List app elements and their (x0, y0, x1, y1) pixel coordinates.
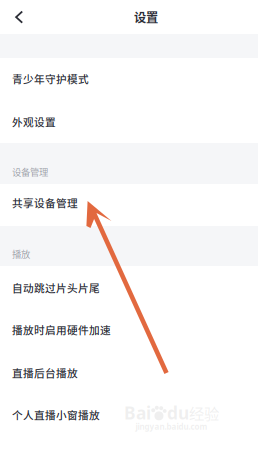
staticText: 播放 (12, 247, 30, 260)
staticText: 设置 (134, 8, 158, 26)
staticText: 外观设置 (12, 114, 56, 129)
button[interactable]: Back (0, 0, 34, 34)
staticText: 共享设备管理 (12, 195, 78, 210)
staticText: 个人直播小窗播放 (12, 407, 100, 422)
staticText: 青少年守护模式 (12, 71, 89, 86)
staticText: 自动跳过片头片尾 (12, 280, 100, 295)
button[interactable]: 个人直播小窗播放 (0, 394, 258, 436)
staticText: Bai (124, 401, 151, 424)
staticText: 经验 (189, 402, 219, 424)
staticText: 直播后台播放 (12, 365, 78, 380)
button[interactable]: 青少年守护模式 (0, 58, 258, 101)
button[interactable]: 共享设备管理 (0, 184, 258, 226)
staticText: 播放时启用硬件加速 (12, 322, 111, 337)
staticText: 设备管理 (12, 165, 48, 178)
staticText: du (167, 401, 189, 424)
staticText: jingyan.baidu.com (135, 421, 207, 432)
button[interactable]: 直播后台播放 (0, 351, 258, 394)
button[interactable]: 外观设置 (0, 101, 258, 143)
button[interactable]: 播放时启用硬件加速 (0, 309, 258, 351)
button[interactable]: 自动跳过片头片尾 (0, 266, 258, 309)
